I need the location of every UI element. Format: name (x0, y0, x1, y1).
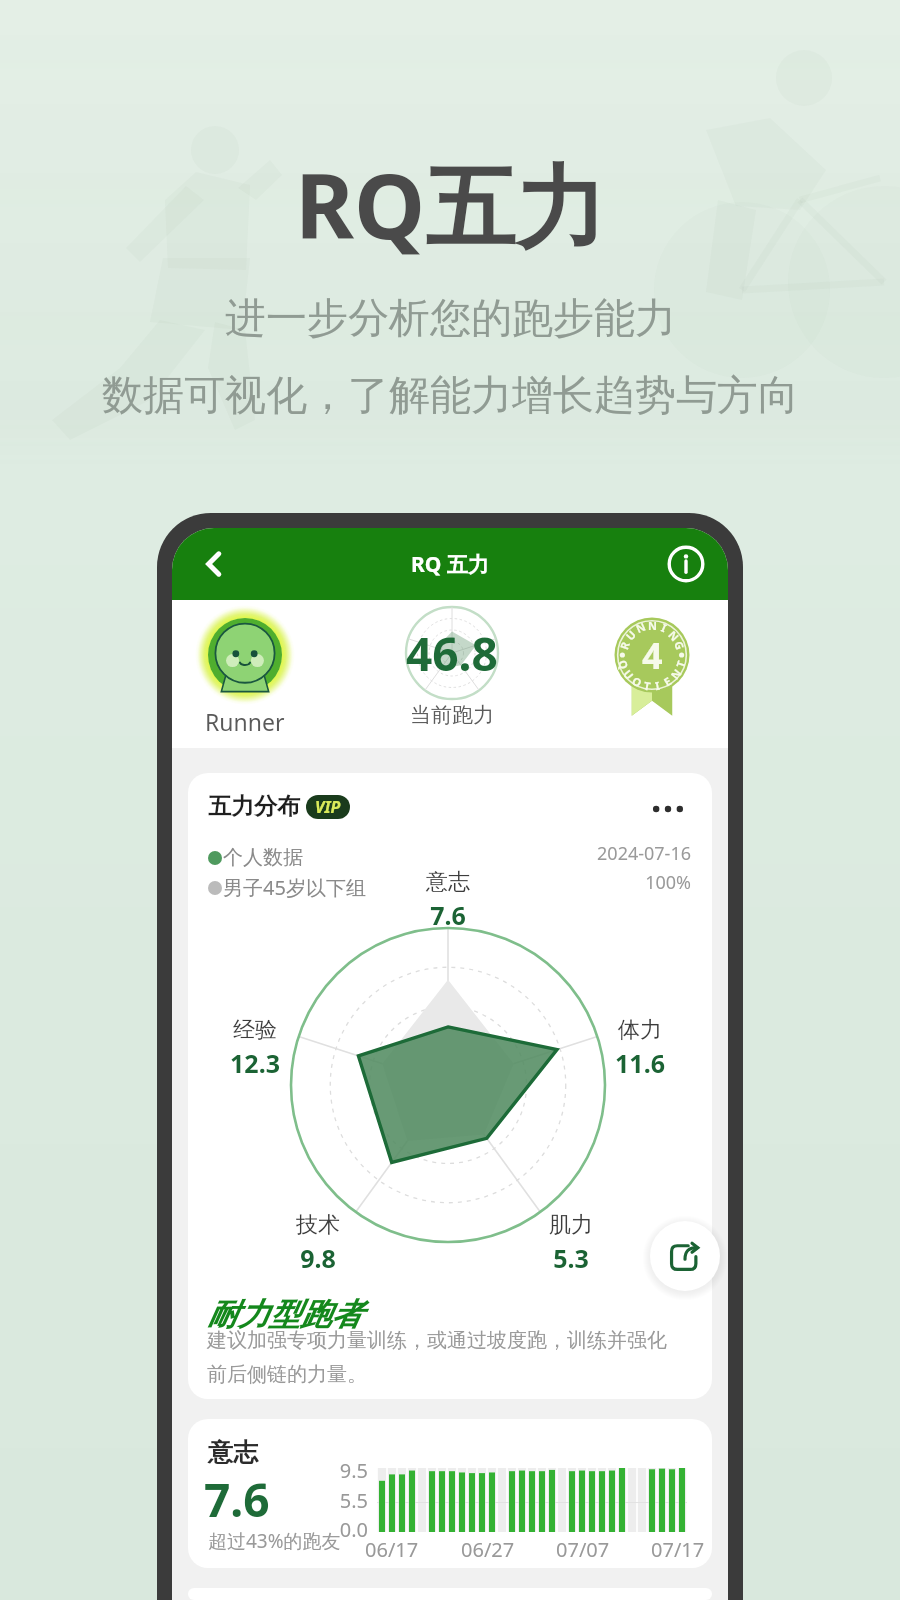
staticText: 9.5 (308, 1457, 368, 1484)
staticText: 数据可视化，了解能力增长趋势与方向 (102, 370, 799, 422)
staticText: VIP (315, 796, 341, 818)
staticText: RQ 五力 (411, 550, 489, 579)
staticText: 耐力型跑者 (207, 1295, 362, 1334)
staticText: Q (615, 658, 632, 671)
staticText: 经验 (233, 1016, 277, 1044)
staticText: 进一步分析您的跑步能力 (225, 293, 676, 345)
staticText: 男子45岁以下组 (223, 874, 366, 901)
staticText: I (659, 620, 670, 635)
button[interactable]: VIP (306, 795, 350, 819)
staticText: 5.3 (553, 1241, 589, 1275)
staticText: I (654, 678, 661, 693)
staticText: 4 (642, 631, 663, 680)
button[interactable]: Info (658, 536, 714, 592)
staticText: 个人数据 (223, 845, 303, 870)
staticText: R (616, 639, 633, 651)
staticText: 46.8 (406, 622, 498, 685)
staticText: 100% (645, 870, 691, 895)
staticText: 06/27 (461, 1536, 515, 1563)
staticText: N (665, 627, 682, 644)
staticText: 意志 (426, 868, 470, 896)
staticText: Runner (205, 706, 285, 737)
staticText: 06/17 (365, 1536, 419, 1563)
staticText: T (672, 658, 689, 669)
button[interactable]: Back (186, 536, 242, 592)
staticText: 2024-07-16 (597, 841, 691, 866)
staticText: 意志 (208, 1437, 258, 1468)
staticText: 07/17 (651, 1536, 705, 1563)
staticText: N (648, 618, 657, 633)
staticText: G (671, 639, 688, 651)
staticText: T (643, 678, 652, 694)
staticText: N (633, 619, 648, 636)
staticText: 体力 (618, 1016, 662, 1044)
staticText: 7.6 (204, 1468, 270, 1531)
staticText: 7.6 (430, 898, 466, 932)
button[interactable]: Share (650, 1221, 720, 1291)
staticText: 当前跑力 (410, 702, 494, 728)
staticText: O (629, 673, 645, 690)
button[interactable]: Runner (195, 605, 295, 737)
staticText: 5.5 (308, 1487, 368, 1514)
staticText: U (620, 666, 638, 683)
staticText: 技术 (296, 1211, 340, 1239)
staticText: N (667, 666, 684, 682)
staticText: U (622, 627, 639, 643)
button[interactable]: R (600, 603, 704, 719)
button[interactable]: More options (646, 787, 690, 831)
staticText: 超过43%的跑友 (208, 1528, 341, 1554)
staticText: 五力分布 (208, 792, 300, 821)
staticText: 建议加强专项力量训练，或通过坡度跑，训练并强化前后侧链的力量。 (207, 1328, 677, 1387)
staticText: 肌力 (549, 1211, 593, 1239)
staticText: 07/07 (556, 1536, 610, 1563)
staticText: 9.8 (300, 1241, 336, 1275)
staticText: 0.0 (308, 1516, 368, 1543)
staticText: RQ五力 (295, 143, 606, 266)
button[interactable]: 46.8 (402, 605, 502, 728)
staticText: E (661, 673, 674, 689)
staticText: 12.3 (230, 1046, 280, 1080)
staticText: 11.6 (615, 1046, 665, 1080)
